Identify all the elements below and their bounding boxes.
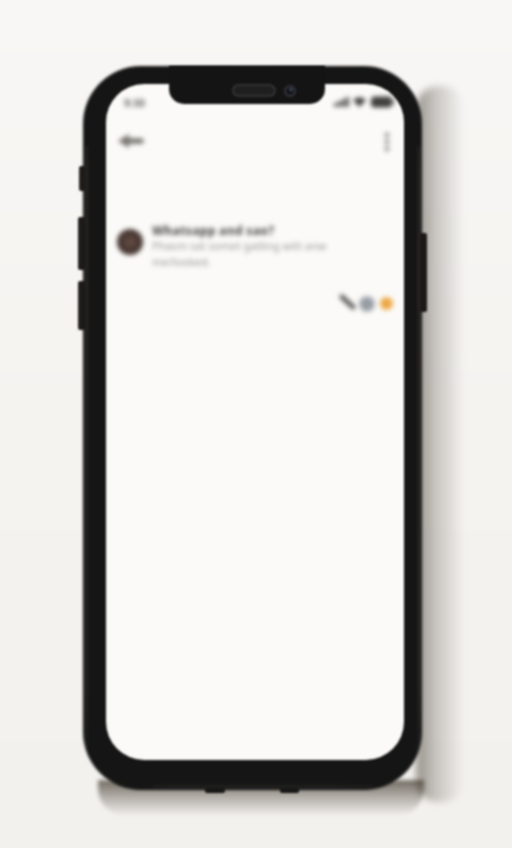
- staticText: 9:30: [124, 96, 145, 110]
- button[interactable]: [115, 131, 145, 151]
- staticText: Whatsapp and sao?: [152, 222, 275, 238]
- button[interactable]: [359, 296, 375, 312]
- staticText: Phasm sat somet gatling witt anw me/look…: [152, 238, 327, 269]
- button[interactable]: [376, 130, 398, 154]
- button[interactable]: [380, 297, 393, 310]
- button[interactable]: [338, 292, 358, 312]
- button[interactable]: Whatsapp and sao?: [114, 222, 396, 278]
